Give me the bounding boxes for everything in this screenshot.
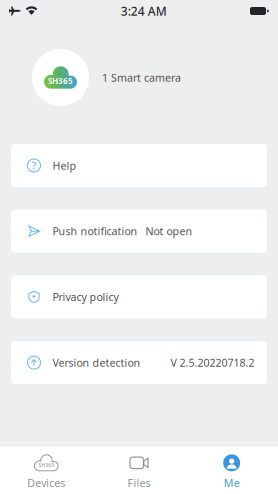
button[interactable]: Push notification [11, 210, 267, 253]
staticText: SH365 [48, 76, 73, 86]
staticText: V 2.5.20220718.2 [170, 355, 254, 370]
staticText: Privacy policy [52, 290, 118, 304]
staticText: SH365 [38, 461, 54, 468]
staticText: Me [224, 476, 240, 490]
staticText: Files [127, 476, 150, 490]
staticText: 3:24 AM [121, 3, 167, 19]
button[interactable]: Files [93, 455, 185, 490]
staticText: Devices [27, 476, 65, 490]
staticText: Not open [145, 224, 192, 238]
staticText: ? [31, 158, 36, 173]
button[interactable]: ? [11, 144, 267, 187]
button[interactable]: Privacy policy [11, 275, 267, 318]
button[interactable]: SH365 [0, 455, 93, 490]
staticText: Version detection [52, 355, 140, 370]
staticText: Help [52, 158, 76, 173]
button[interactable]: Version detection [11, 341, 267, 384]
staticText: 1 Smart camera [102, 70, 181, 85]
button[interactable]: Me [185, 455, 278, 490]
staticText: Push notification [52, 224, 137, 238]
